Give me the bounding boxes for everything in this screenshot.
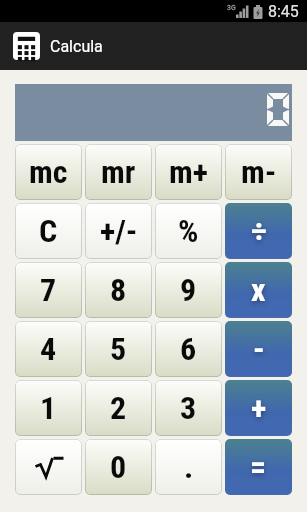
staticText: 5 — [110, 330, 127, 368]
staticText: - — [253, 330, 265, 368]
button[interactable]: mr — [85, 144, 152, 200]
button[interactable]: 3 — [155, 380, 222, 436]
button[interactable]: 2 — [85, 380, 152, 436]
button[interactable]: +/- — [85, 203, 152, 259]
staticText: C — [39, 212, 58, 250]
button[interactable]: x — [225, 262, 292, 318]
staticText: 8 — [110, 271, 127, 309]
button[interactable]: - — [225, 321, 292, 377]
button[interactable]: 0 — [85, 439, 152, 495]
staticText: m- — [241, 153, 277, 191]
staticText: + — [251, 389, 267, 427]
button[interactable] — [15, 439, 82, 495]
button[interactable]: . — [155, 439, 222, 495]
button[interactable]: mc — [15, 144, 82, 200]
staticText: 2 — [110, 389, 127, 427]
button[interactable]: m- — [225, 144, 292, 200]
button[interactable]: 9 — [155, 262, 222, 318]
button[interactable]: 6 — [155, 321, 222, 377]
staticText: mr — [101, 153, 136, 191]
staticText: . — [184, 448, 194, 486]
staticText: x — [251, 271, 266, 309]
staticText: 0 — [110, 448, 127, 486]
button[interactable]: % — [155, 203, 222, 259]
staticText: % — [178, 212, 199, 250]
button[interactable]: m+ — [155, 144, 222, 200]
staticText: 7 — [40, 271, 57, 309]
staticText: 8:45 — [268, 2, 299, 21]
staticText: ÷ — [251, 212, 267, 250]
staticText: = — [250, 448, 267, 486]
button[interactable]: = — [225, 439, 292, 495]
staticText: 4 — [40, 330, 57, 368]
staticText: 3 — [180, 389, 197, 427]
button[interactable]: + — [225, 380, 292, 436]
button[interactable]: 4 — [15, 321, 82, 377]
staticText: mc — [29, 153, 68, 191]
button[interactable]: 1 — [15, 380, 82, 436]
staticText: m+ — [169, 153, 208, 191]
staticText: 3G — [227, 4, 236, 12]
button[interactable]: 5 — [85, 321, 152, 377]
staticText: 9 — [180, 271, 197, 309]
staticText: +/- — [100, 212, 138, 250]
button[interactable]: ÷ — [225, 203, 292, 259]
button[interactable]: 7 — [15, 262, 82, 318]
staticText: 6 — [180, 330, 197, 368]
staticText: Calcula — [50, 37, 103, 56]
button[interactable]: 8 — [85, 262, 152, 318]
staticText: 1 — [40, 389, 57, 427]
button[interactable]: C — [15, 203, 82, 259]
